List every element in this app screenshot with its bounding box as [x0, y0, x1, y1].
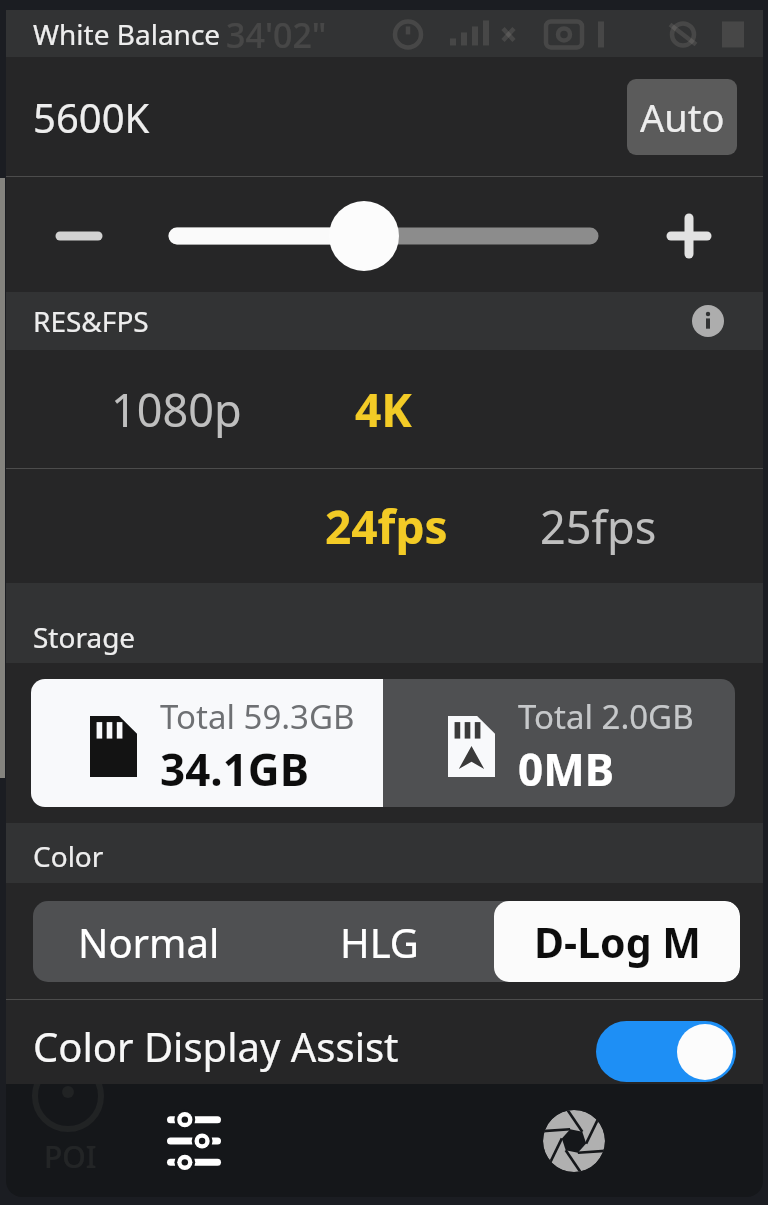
staticText: 34.1GB [160, 739, 309, 799]
staticText: White Balance [33, 15, 221, 53]
staticText: 25fps [540, 496, 657, 557]
button[interactable]: D-Log M [494, 901, 740, 982]
staticText: 1080p [111, 379, 242, 440]
staticText: 4K [355, 378, 412, 441]
staticText: Storage [33, 618, 136, 656]
button[interactable]: Total 59.3GB [31, 679, 383, 807]
staticText: Total 59.3GB [160, 694, 355, 739]
staticText: Color [33, 837, 104, 875]
staticText: Normal [78, 915, 220, 969]
button[interactable]: Auto [627, 79, 737, 155]
button[interactable]: Settings [114, 1084, 274, 1197]
staticText: HLG [340, 915, 419, 969]
staticText: 34'02" [226, 12, 327, 58]
staticText: POI [44, 1136, 97, 1177]
staticText: 24fps [325, 495, 448, 558]
button[interactable]: Camera [494, 1084, 654, 1197]
button[interactable]: 24fps [291, 469, 481, 583]
button[interactable]: Total 2.0GB [383, 679, 735, 807]
staticText: D-Log M [534, 914, 701, 970]
button[interactable]: Decrease white balance [51, 201, 119, 269]
button[interactable]: Info [692, 305, 724, 337]
button[interactable]: Normal [33, 901, 264, 982]
button[interactable]: 25fps [503, 469, 693, 583]
button[interactable]: 4K [299, 350, 467, 468]
staticText: 0MB [518, 739, 614, 799]
staticText: Color Display Assist [33, 1019, 399, 1073]
staticText: Auto [640, 91, 725, 143]
staticText: Total 2.0GB [518, 694, 694, 739]
button[interactable]: 1080p [77, 350, 275, 468]
button[interactable]: Color Display Assist [6, 1000, 763, 1084]
staticText: RES&FPS [33, 302, 149, 340]
staticText: 5600K [33, 90, 150, 144]
button[interactable]: Increase white balance [650, 201, 718, 269]
button[interactable]: HLG [264, 901, 494, 982]
